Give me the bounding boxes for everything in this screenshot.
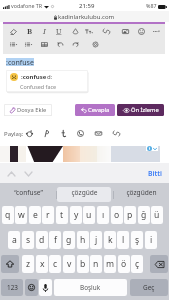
- button[interactable]: Ordered list: [9, 39, 18, 50]
- staticText: vodafone TR: [11, 2, 43, 9]
- button[interactable]: q: [2, 206, 14, 224]
- staticText: m: [106, 258, 115, 270]
- staticText: w: [18, 209, 25, 221]
- staticText: ü: [154, 209, 160, 221]
- button[interactable]: ğ: [138, 206, 150, 224]
- staticText: ş: [135, 234, 140, 246]
- button[interactable]: f: [49, 231, 61, 249]
- button[interactable]: ş: [131, 231, 143, 249]
- button[interactable]: Geç: [130, 279, 168, 296]
- button[interactable]: Bullet list: [24, 39, 33, 50]
- staticText: ğ: [141, 209, 147, 221]
- button[interactable]: j: [90, 231, 102, 249]
- staticText: Cevapla: [88, 106, 110, 114]
- staticText: Bitti: [148, 169, 162, 178]
- button[interactable]: Backspace: [150, 255, 168, 273]
- button[interactable]: Emoji: [25, 279, 38, 296]
- button[interactable]: Share on Tumblr: [58, 128, 68, 138]
- button[interactable]: Redo: [71, 39, 80, 50]
- button[interactable]: k: [104, 231, 116, 249]
- button[interactable]: Copy link: [111, 128, 121, 138]
- button[interactable]: m: [104, 255, 116, 273]
- button[interactable]: w: [15, 206, 27, 224]
- staticText: k: [108, 234, 113, 246]
- staticText: ı: [102, 209, 105, 221]
- button[interactable]: Share on Pinterest: [41, 128, 51, 138]
- button[interactable]: g: [63, 231, 75, 249]
- button[interactable]: h: [77, 231, 89, 249]
- button[interactable]: ö: [118, 255, 130, 273]
- button[interactable]: r: [42, 206, 54, 224]
- button[interactable]: e: [29, 206, 41, 224]
- button[interactable]: Shift: [1, 255, 19, 273]
- button[interactable]: ç: [131, 255, 143, 273]
- staticText: i: [150, 234, 153, 246]
- button[interactable]: :confuse: [6, 70, 88, 92]
- button[interactable]: Ön İzleme: [117, 104, 164, 116]
- button[interactable]: ü: [151, 206, 163, 224]
- button[interactable]: Share on Reddit: [24, 128, 34, 138]
- button[interactable]: b: [77, 255, 89, 273]
- button[interactable]: o: [111, 206, 123, 224]
- button[interactable]: c: [49, 255, 61, 273]
- staticText: p: [127, 209, 133, 221]
- staticText: q: [5, 209, 11, 221]
- button[interactable]: Share on WhatsApp: [75, 128, 85, 138]
- staticText: %87: [146, 2, 157, 9]
- button[interactable]: s: [22, 231, 34, 249]
- button[interactable]: I: [40, 25, 49, 36]
- button[interactable]: Ad choices: [147, 146, 157, 151]
- button[interactable]: Dosya Ekle: [4, 104, 52, 116]
- staticText: U: [56, 26, 62, 36]
- button[interactable]: i: [145, 231, 157, 249]
- button[interactable]: Cevapla: [75, 104, 115, 116]
- button[interactable]: u: [83, 206, 95, 224]
- button[interactable]: l: [117, 231, 129, 249]
- button[interactable]: Boşluk: [54, 279, 127, 296]
- button[interactable]: Share by e-mail: [93, 128, 103, 138]
- staticText: :confuse: [21, 73, 47, 81]
- button[interactable]: Previous field: [5, 167, 18, 180]
- staticText: I: [43, 26, 46, 36]
- button[interactable]: Insert emoji: [137, 26, 146, 37]
- button[interactable]: ı: [97, 206, 109, 224]
- button[interactable]: Dictation: [39, 279, 52, 296]
- button[interactable]: z: [22, 255, 34, 273]
- staticText: e: [33, 209, 38, 221]
- button[interactable]: B: [25, 25, 34, 36]
- button[interactable]: Text colour: [71, 26, 80, 37]
- button[interactable]: Insert image: [121, 26, 130, 37]
- button[interactable]: Bitti: [144, 167, 165, 179]
- button[interactable]: Undo: [56, 39, 65, 50]
- staticText: Dosya Ekle: [17, 106, 47, 114]
- button[interactable]: Insert table: [40, 39, 49, 50]
- button[interactable]: y: [70, 206, 82, 224]
- staticText: v: [67, 258, 72, 270]
- staticText: d: [39, 234, 45, 246]
- button[interactable]: çözgüden: [113, 183, 169, 206]
- staticText: B: [27, 26, 33, 36]
- button[interactable]: U: [54, 25, 63, 36]
- button[interactable]: Settings: [91, 39, 100, 50]
- button[interactable]: t: [56, 206, 68, 224]
- staticText: t: [60, 209, 64, 221]
- button[interactable]: Next field: [22, 167, 35, 180]
- button[interactable]: 123: [1, 279, 23, 296]
- button[interactable]: More options: [152, 26, 161, 37]
- button[interactable]: Font size: [84, 26, 93, 37]
- staticText: ç: [135, 258, 140, 270]
- button[interactable]: Erase formatting: [9, 26, 18, 37]
- button[interactable]: v: [63, 255, 75, 273]
- staticText: x: [40, 258, 45, 270]
- button[interactable]: çözgüde: [56, 183, 112, 206]
- button[interactable]: a: [8, 231, 20, 249]
- button[interactable]: x: [36, 255, 48, 273]
- button[interactable]: Insert link: [102, 26, 111, 37]
- staticText: 21:59: [79, 2, 95, 10]
- button[interactable]: “confuse”: [0, 183, 56, 206]
- button[interactable]: p: [124, 206, 136, 224]
- staticText: Ön İzleme: [131, 106, 159, 114]
- staticText: ö: [121, 258, 127, 270]
- button[interactable]: d: [36, 231, 48, 249]
- button[interactable]: n: [90, 255, 102, 273]
